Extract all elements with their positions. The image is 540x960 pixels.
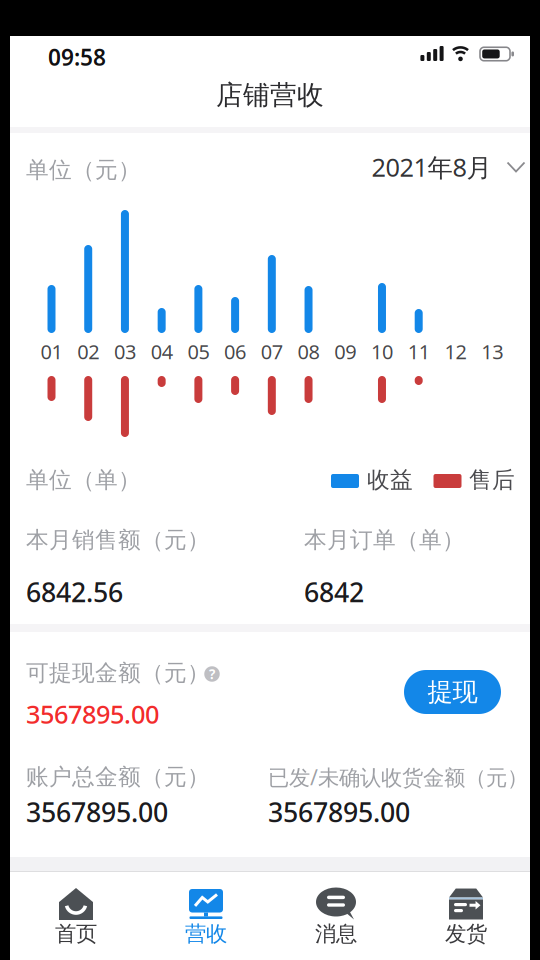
staticText: 06 [224, 338, 246, 365]
staticText: 04 [151, 338, 173, 365]
staticText: 提现 [427, 676, 477, 707]
staticText: 2021年8月 [371, 150, 491, 184]
staticText: 09 [334, 338, 356, 365]
staticText: 05 [187, 338, 209, 365]
staticText: 本月订单（单） [304, 526, 465, 554]
staticText: 02 [77, 338, 99, 365]
staticText: 可提现金额（元） [26, 659, 210, 687]
staticText: 3567895.00 [26, 794, 168, 830]
button[interactable]: 首页 [16, 886, 136, 960]
staticText: 账户总金额（元） [26, 763, 210, 791]
staticText: 单位（元） [26, 156, 141, 184]
staticText: 收益 [367, 466, 413, 494]
staticText: 店铺营收 [216, 79, 324, 111]
button[interactable]: 营收 [146, 886, 266, 960]
staticText: 6842 [304, 574, 364, 610]
staticText: 13 [481, 338, 503, 365]
staticText: 03 [114, 338, 136, 365]
staticText: 09:58 [48, 42, 106, 72]
staticText: 6842.56 [26, 574, 123, 610]
staticText: 3567895.00 [268, 794, 410, 830]
button[interactable]: 发货 [406, 886, 526, 960]
button[interactable]: 消息 [276, 886, 396, 960]
button[interactable]: 提现 [404, 670, 501, 714]
staticText: 营收 [185, 921, 227, 947]
staticText: 08 [297, 338, 319, 365]
staticText: 01 [40, 338, 62, 365]
staticText: 首页 [55, 921, 97, 947]
staticText: 发货 [445, 921, 487, 947]
button[interactable]: 2021年8月 [371, 150, 524, 184]
staticText: 售后 [469, 466, 515, 494]
staticText: 已发/未确认收货金额（元） [268, 763, 528, 791]
staticText: 07 [261, 338, 283, 365]
staticText: 消息 [315, 921, 357, 947]
staticText: 本月销售额（元） [26, 526, 210, 554]
staticText: 11 [408, 338, 430, 365]
staticText: ? [209, 665, 215, 683]
staticText: 单位（单） [26, 466, 141, 494]
staticText: 10 [371, 338, 393, 365]
button[interactable]: ? [204, 666, 220, 682]
staticText: 12 [444, 338, 466, 365]
staticText: 3567895.00 [26, 697, 159, 731]
